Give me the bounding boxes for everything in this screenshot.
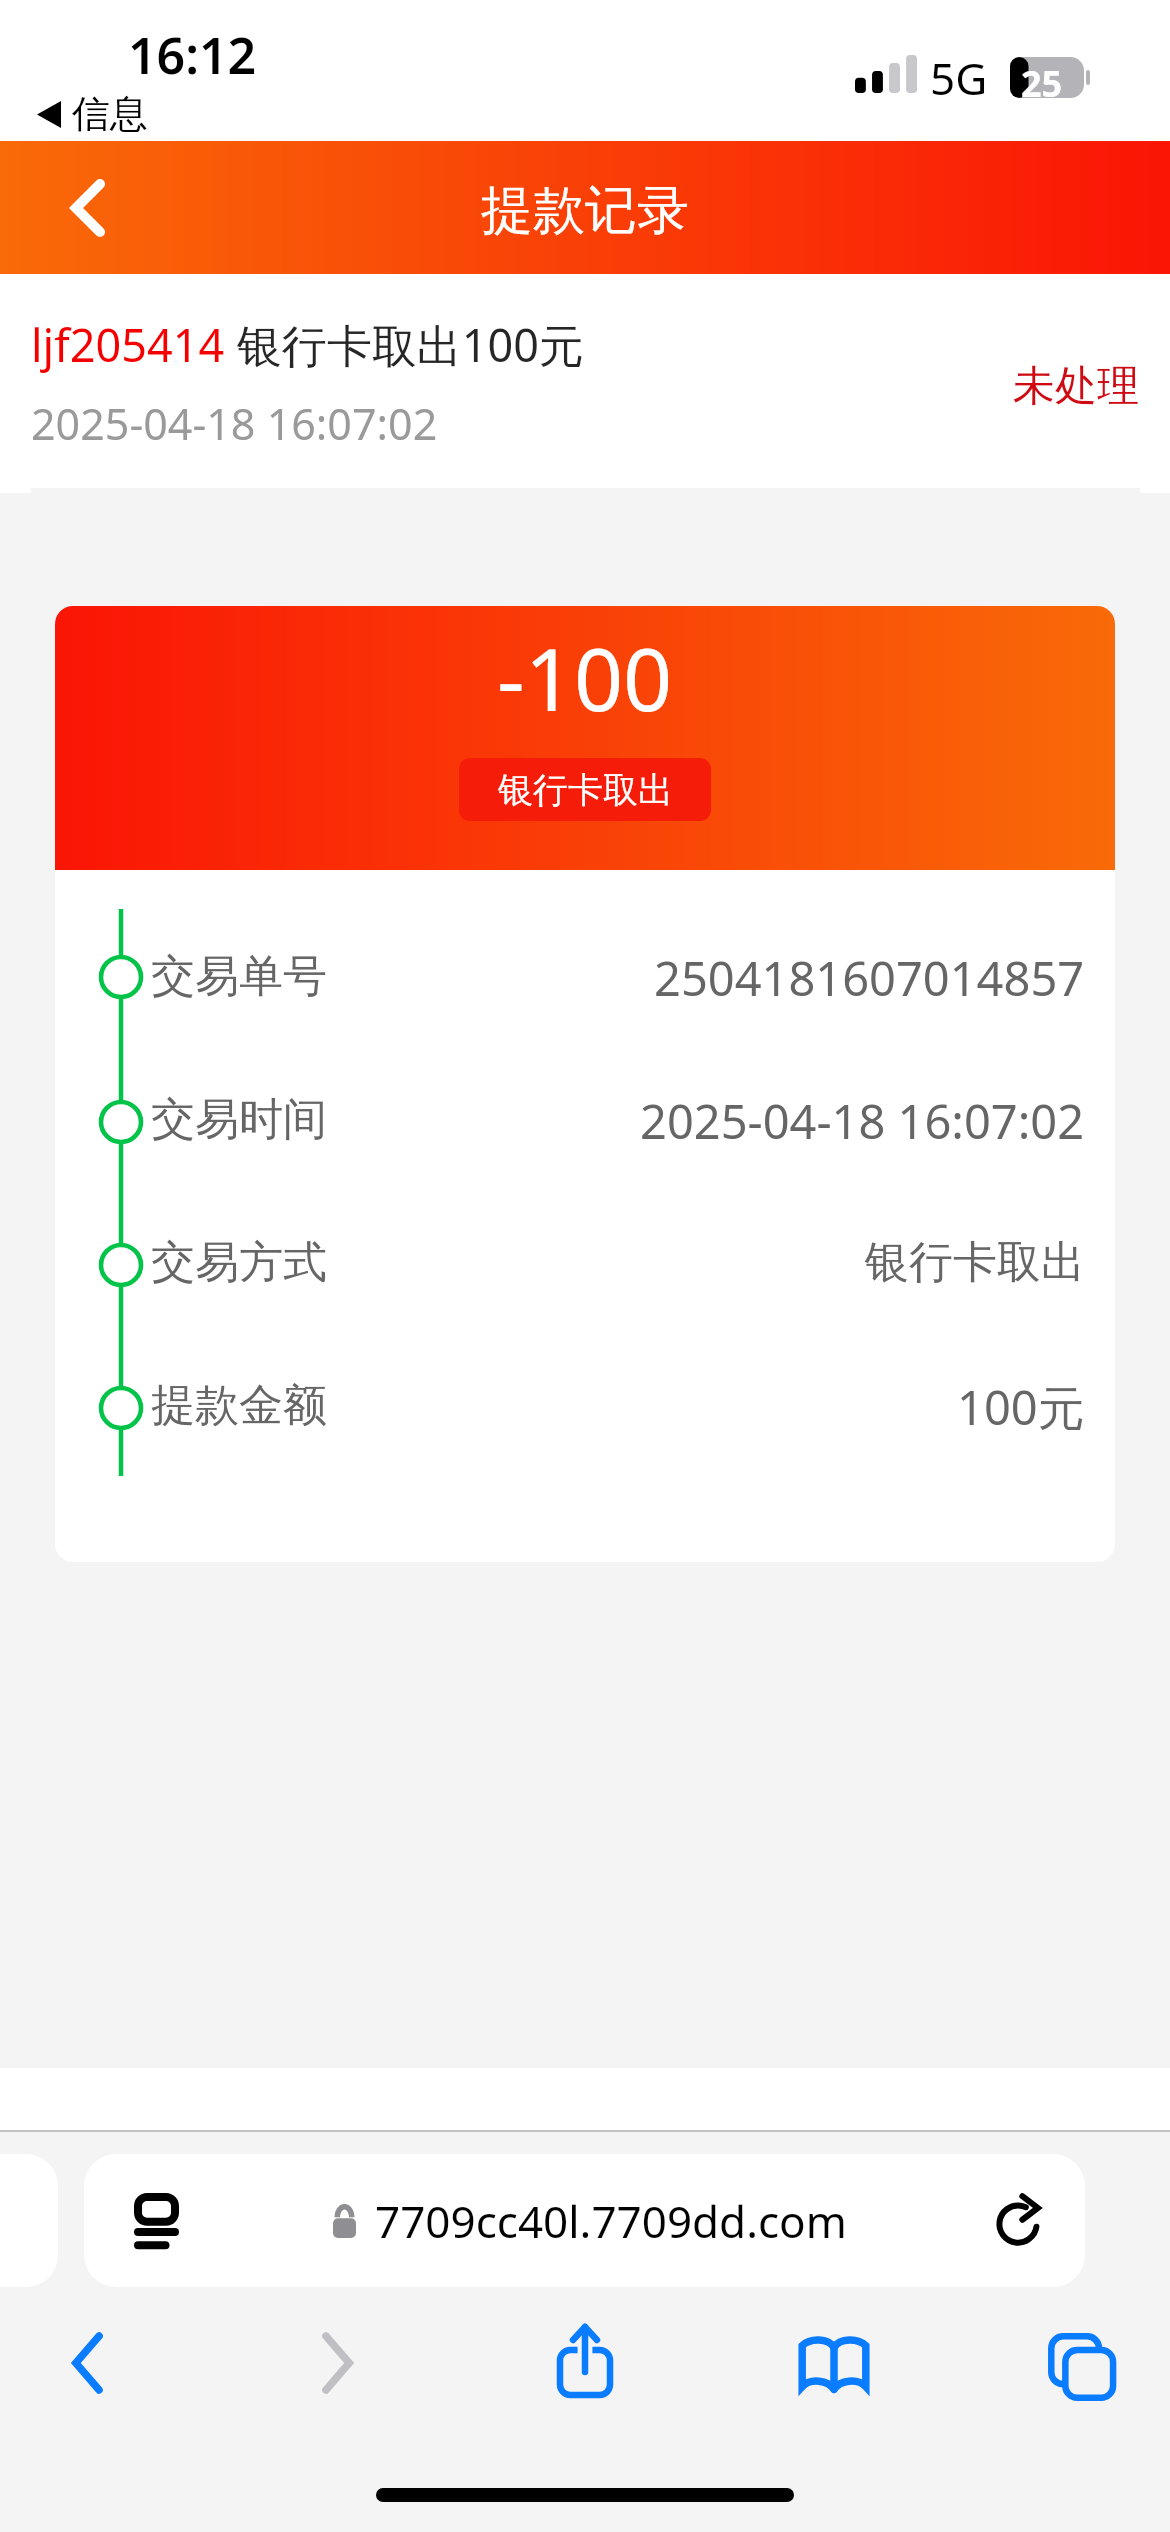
button[interactable]: Back — [51, 2298, 125, 2428]
button[interactable]: Bookmarks — [797, 2298, 871, 2428]
staticText: 2025-04-18 16:07:02 — [640, 1089, 1085, 1149]
staticText: 100元 — [957, 1375, 1085, 1435]
staticText: 交易单号 — [151, 949, 327, 1004]
staticText: 银行卡取出 — [865, 1235, 1085, 1290]
other: Reload — [951, 2154, 1085, 2287]
staticText: 提款金额 — [151, 1378, 327, 1433]
button[interactable]: Back — [48, 168, 128, 248]
staticText: 交易时间 — [151, 1092, 327, 1147]
staticText: 16:12 — [128, 21, 257, 89]
staticText: 提款记录 — [481, 178, 689, 244]
button[interactable]: Share — [548, 2298, 622, 2428]
staticText: 2025-04-18 16:07:02 — [31, 394, 438, 453]
staticText: 5G — [930, 48, 988, 108]
button[interactable]: 银行卡取出 — [459, 758, 711, 821]
button[interactable]: Forward — [300, 2298, 374, 2428]
staticText: 7709cc40l.7709dd.com — [375, 2191, 847, 2251]
staticText: 未处理 — [1013, 360, 1139, 413]
staticText: 银行卡取出100元 — [225, 314, 584, 375]
staticText: ljf205414 — [31, 314, 225, 375]
staticText: 交易方式 — [151, 1235, 327, 1290]
button[interactable]: Tabs — [1045, 2298, 1119, 2428]
staticText: 银行卡取出 — [498, 768, 673, 812]
staticText: 信息 — [72, 90, 148, 138]
other: Reader view — [84, 2154, 229, 2287]
staticText: 25 — [1021, 59, 1063, 108]
button[interactable]: ljf205414 — [0, 274, 1170, 493]
button[interactable]: Reader view — [84, 2154, 1085, 2287]
staticText: 2504181607014857 — [654, 946, 1085, 1006]
staticText: -100 — [497, 619, 673, 736]
